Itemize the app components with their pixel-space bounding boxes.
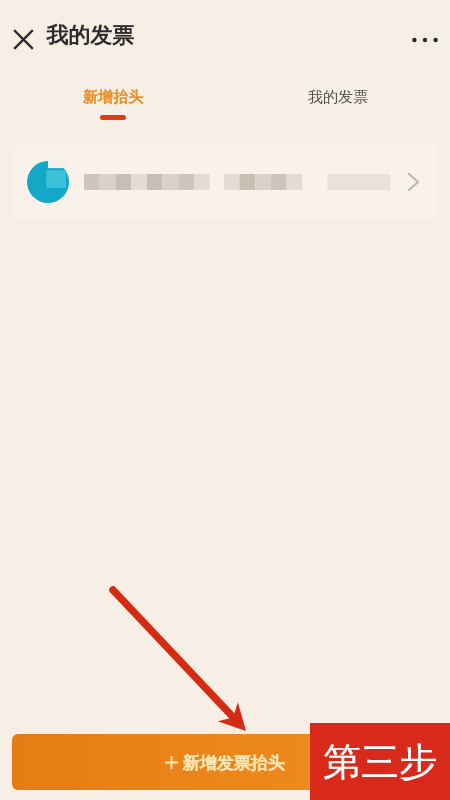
staticText: 第三步 xyxy=(310,738,450,786)
staticText: 新增发票抬头 xyxy=(178,751,285,774)
staticText: 我的发票 xyxy=(46,22,134,50)
button[interactable]: 新增抬头 xyxy=(0,72,225,132)
staticText: 我的发票 xyxy=(308,88,368,107)
button[interactable]: 新增发票抬头 xyxy=(12,734,438,790)
staticText: 新增抬头 xyxy=(83,88,143,107)
button[interactable]: 我的发票 xyxy=(225,72,450,132)
button[interactable]: More options xyxy=(405,20,445,60)
button[interactable]: Close xyxy=(6,22,40,56)
button[interactable] xyxy=(13,144,437,219)
